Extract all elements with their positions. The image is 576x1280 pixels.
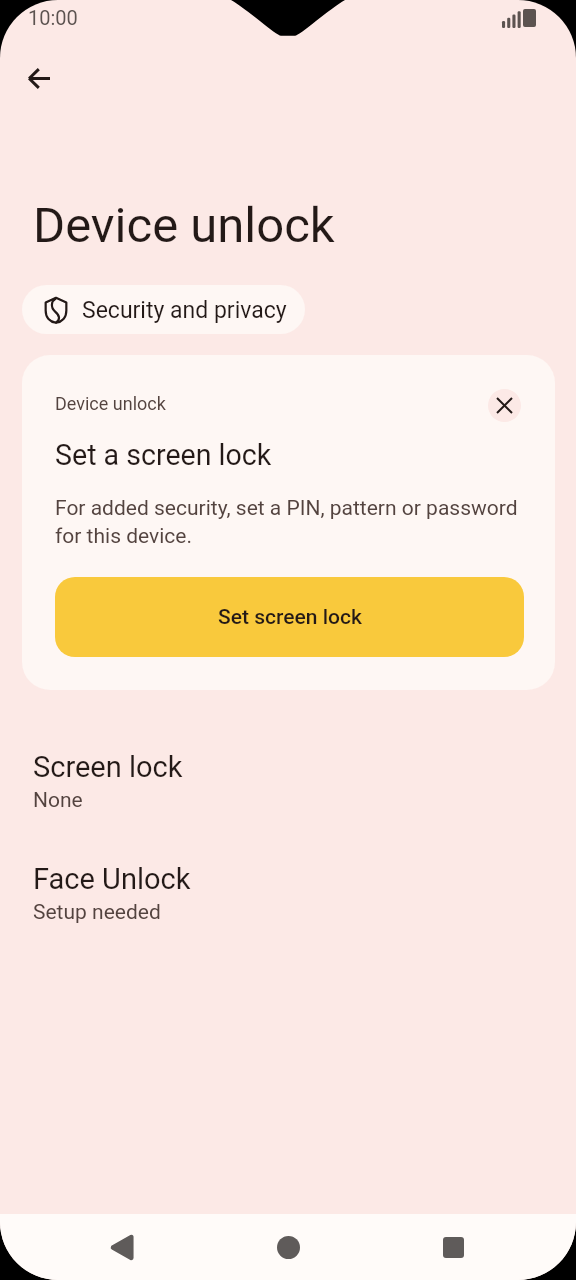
staticText: Face Unlock xyxy=(33,862,191,896)
button[interactable]: Security and privacy xyxy=(22,285,305,334)
staticText: Security and privacy xyxy=(82,297,287,324)
button[interactable]: Face Unlock xyxy=(0,858,576,931)
button[interactable]: Close xyxy=(488,389,521,422)
staticText: Device unlock xyxy=(33,197,335,254)
staticText: For added security, set a PIN, pattern o… xyxy=(55,496,528,548)
button[interactable]: Screen lock xyxy=(0,746,576,819)
staticText: Screen lock xyxy=(33,750,183,784)
staticText: Device unlock xyxy=(55,393,166,414)
button[interactable]: Home xyxy=(248,1214,328,1280)
button[interactable]: Back xyxy=(15,54,63,102)
button[interactable]: Back xyxy=(80,1214,162,1280)
button[interactable]: Set screen lock xyxy=(55,577,524,657)
staticText: None xyxy=(33,788,83,813)
staticText: Set screen lock xyxy=(218,605,362,630)
staticText: Set a screen lock xyxy=(55,438,272,472)
staticText: 10:00 xyxy=(28,6,78,29)
staticText: Setup needed xyxy=(33,900,161,925)
button[interactable]: Recents xyxy=(413,1214,493,1280)
